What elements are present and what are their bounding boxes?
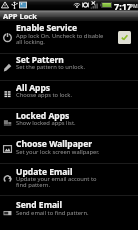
staticText: APP Lock (3, 11, 37, 21)
staticText: Send Email (16, 199, 63, 211)
staticText: 7:17 (114, 0, 132, 10)
staticText: All Apps (16, 82, 51, 94)
staticText: Set Pattern (16, 54, 64, 66)
staticText: Choose apps to lock. (16, 91, 108, 99)
staticText: Locked Apps (16, 110, 70, 122)
button[interactable]: Choose Wallpaper (0, 135, 138, 163)
button[interactable]: Update Email (0, 163, 138, 195)
staticText: Send email to find pattern. (16, 209, 108, 217)
button[interactable]: Set Pattern (0, 53, 138, 80)
button[interactable]: Send Email (0, 195, 138, 230)
staticText: Set the pattern to unlock. (16, 63, 108, 71)
staticText: Show locked apps list. (16, 119, 108, 127)
button[interactable]: All Apps (0, 80, 138, 108)
staticText: PM (130, 3, 138, 10)
staticText: Enable Service (16, 22, 77, 34)
staticText: Update Email (16, 166, 73, 178)
button[interactable]: Locked Apps (0, 108, 138, 135)
staticText: Choose Wallpaper (16, 138, 93, 150)
button[interactable]: Enable Service (0, 21, 138, 53)
staticText: Update your email account to find patter… (16, 175, 108, 188)
staticText: Set your lock screen wallpaper. (16, 148, 108, 156)
staticText: App lock On. Uncheck to disable all lock… (16, 32, 108, 45)
